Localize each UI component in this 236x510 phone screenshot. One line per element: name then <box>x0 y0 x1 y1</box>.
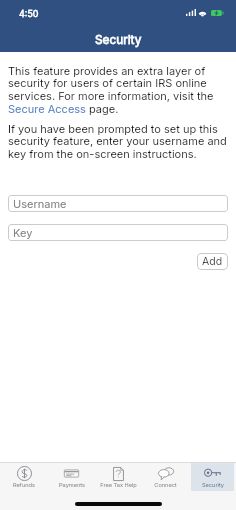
staticText: Security <box>95 33 142 47</box>
staticText: 4:50 <box>19 8 39 19</box>
staticText: Add <box>202 255 223 268</box>
button[interactable]: Username <box>8 195 228 212</box>
button[interactable]: Free Tax Help <box>97 463 140 491</box>
button[interactable]: Payments <box>50 463 93 491</box>
button[interactable]: Security <box>191 463 234 491</box>
staticText: This feature provides an extra layer of … <box>8 64 228 116</box>
staticText: Refunds <box>13 482 35 489</box>
staticText: If you have been prompted to set up this… <box>8 122 228 161</box>
button[interactable]: Key <box>8 224 228 241</box>
button[interactable]: Refunds <box>2 463 46 491</box>
staticText: Key <box>13 226 33 239</box>
staticText: Security <box>202 482 224 489</box>
staticText: Free Tax Help <box>100 482 137 489</box>
button[interactable]: Connect <box>144 463 187 491</box>
staticText: Username <box>13 197 67 210</box>
button[interactable]: Add <box>197 253 228 270</box>
staticText: Payments <box>59 482 85 489</box>
staticText: Connect <box>154 482 177 489</box>
